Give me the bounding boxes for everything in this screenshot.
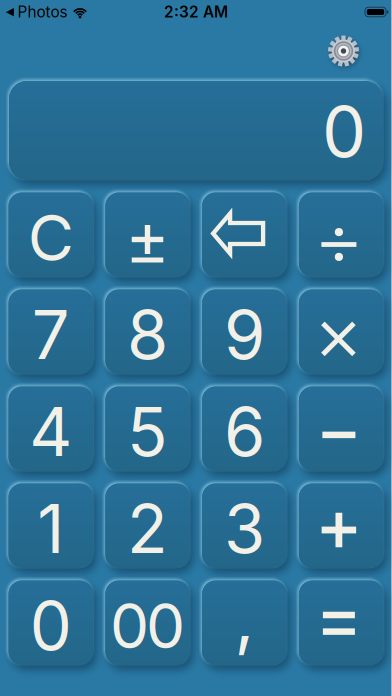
button[interactable]: Back to Photos [0, 3, 87, 21]
button[interactable]: 8 [105, 289, 190, 374]
button[interactable]: 5 [105, 386, 190, 471]
staticText: 7 [32, 294, 70, 375]
button[interactable]: 0 [8, 580, 93, 665]
button[interactable] [299, 580, 383, 665]
staticText: 2 [127, 488, 168, 569]
button[interactable]: , [202, 580, 287, 665]
staticText: 2:32 AM [164, 3, 228, 21]
button[interactable]: Settings [327, 35, 359, 67]
staticText: 0 [322, 89, 366, 174]
staticText: 1 [37, 488, 64, 569]
button[interactable]: 6 [202, 386, 287, 471]
button[interactable]: 00 [105, 580, 190, 665]
staticText: 00 [110, 588, 185, 663]
staticText: 4 [29, 391, 72, 472]
staticText: 5 [127, 391, 168, 472]
staticText: C [28, 199, 74, 276]
button[interactable]: 4 [8, 386, 93, 471]
staticText: 9 [224, 294, 265, 375]
button[interactable]: C [8, 192, 93, 277]
staticText: 8 [127, 294, 168, 375]
button[interactable]: 3 [202, 483, 287, 568]
staticText: 0 [30, 585, 72, 666]
staticText: 6 [224, 391, 265, 472]
button[interactable] [299, 386, 383, 471]
staticText: 3 [224, 488, 265, 569]
button[interactable] [105, 192, 190, 277]
button[interactable] [299, 289, 383, 374]
button[interactable]: 7 [8, 289, 93, 374]
staticText: , [234, 576, 254, 660]
button[interactable] [299, 483, 383, 568]
button[interactable]: 9 [202, 289, 287, 374]
staticText: Photos [17, 3, 67, 21]
button[interactable] [202, 192, 287, 277]
button[interactable]: 2 [105, 483, 190, 568]
button[interactable] [299, 192, 383, 277]
button[interactable]: 1 [8, 483, 93, 568]
